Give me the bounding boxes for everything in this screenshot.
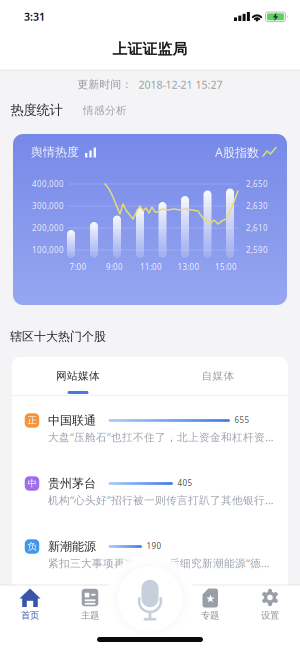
staticText: 中 (27, 478, 36, 489)
staticText: 辖区十大热门个股 (10, 329, 106, 344)
button[interactable]: 自媒体 (158, 359, 278, 393)
staticText: 网站媒体 (56, 369, 100, 382)
staticText: 上证证监局 (112, 40, 187, 58)
staticText: 设置 (261, 610, 279, 621)
staticText: 自媒体 (201, 369, 234, 382)
staticText: 贵州茅台 (48, 476, 96, 491)
staticText: A股指数 (215, 144, 259, 160)
button[interactable]: 热度统计 (3, 97, 69, 123)
staticText: 11:00 (140, 262, 162, 272)
staticText: 13:00 (177, 262, 199, 272)
button[interactable]: 负 (12, 523, 288, 586)
staticText: 舆情热度 (31, 145, 79, 159)
button[interactable]: 正 (12, 397, 288, 460)
button[interactable]: 中 (12, 460, 288, 523)
staticText: 100,000 (32, 245, 64, 255)
staticText: 专题 (201, 610, 219, 621)
button[interactable]: 专题 (186, 588, 234, 628)
staticText: 紧扣三大事项再次问询之后细究新潮能源“德… (48, 556, 269, 570)
staticText: 2,650 (246, 179, 268, 189)
staticText: 首页 (21, 610, 39, 621)
staticText: 300,000 (32, 201, 64, 211)
staticText: 主题 (81, 610, 99, 621)
staticText: 负 (27, 541, 36, 552)
button[interactable]: 网站媒体 (18, 359, 138, 393)
staticText: 400,000 (32, 179, 64, 189)
staticText: 情感分析 (83, 104, 127, 117)
staticText: 2018-12-21 15:27 (138, 77, 222, 92)
staticText: 190 (146, 541, 161, 551)
staticText: 新潮能源 (48, 539, 96, 554)
button[interactable]: 情感分析 (75, 97, 135, 123)
staticText: 655 (234, 415, 249, 425)
button[interactable]: 首页 (6, 588, 54, 628)
staticText: 机构“心头好”招行被一则传言打趴了其他银行… (48, 493, 273, 507)
staticText: 中国联通 (48, 413, 96, 428)
staticText: 2,590 (246, 245, 268, 255)
staticText: 2,630 (246, 201, 268, 211)
button[interactable] (105, 555, 195, 645)
staticText: 9:00 (106, 262, 123, 272)
staticText: 405 (177, 478, 192, 488)
staticText: 正 (27, 415, 36, 426)
staticText: 3:31 (24, 9, 45, 24)
button[interactable]: 主题 (66, 588, 114, 628)
staticText: 2,610 (246, 223, 268, 233)
staticText: 更新时间： (77, 78, 132, 91)
staticText: 热度统计 (10, 102, 62, 118)
staticText: 大盘“压舱石”也扛不住了，北上资金和杠杆资… (48, 430, 273, 444)
button[interactable]: 设置 (246, 588, 294, 628)
staticText: 200,000 (32, 223, 64, 233)
staticText: 7:00 (69, 262, 86, 272)
staticText: 15:00 (215, 262, 237, 272)
